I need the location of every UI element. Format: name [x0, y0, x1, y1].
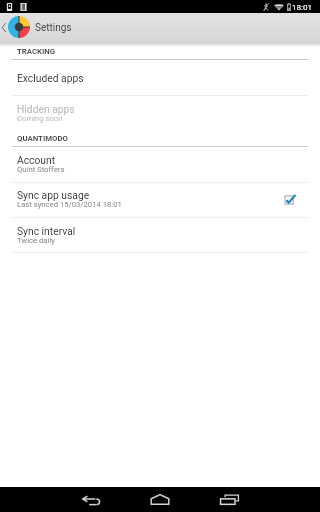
staticText: Last synced 15/03/2014 18:01 [17, 200, 122, 209]
staticText: Sync app usage [17, 189, 90, 201]
staticText: Quint Stoffers [17, 165, 65, 174]
button[interactable]: Sync app usage [0, 183, 320, 217]
button[interactable]: Recent apps [203, 487, 255, 512]
button[interactable]: Account [0, 147, 320, 182]
staticText: Excluded apps [17, 72, 84, 84]
staticText: TRACKING [17, 47, 56, 56]
staticText: 18:01 [292, 2, 313, 11]
staticText: Account [17, 154, 56, 166]
staticText: Coming soon [17, 114, 63, 123]
button[interactable]: Home [134, 487, 186, 512]
staticText: Twice daily [17, 236, 55, 245]
staticText: Settings [35, 22, 72, 34]
staticText: Hidden apps [17, 103, 75, 115]
staticText: Sync interval [17, 225, 76, 237]
button[interactable]: Sync interval [0, 218, 320, 252]
staticText: QUANTIMODO [17, 134, 68, 143]
button[interactable]: Excluded apps [0, 60, 320, 95]
button[interactable]: Hidden apps [0, 96, 320, 131]
button[interactable]: Back [65, 487, 117, 512]
button[interactable]: Up [0, 13, 320, 44]
